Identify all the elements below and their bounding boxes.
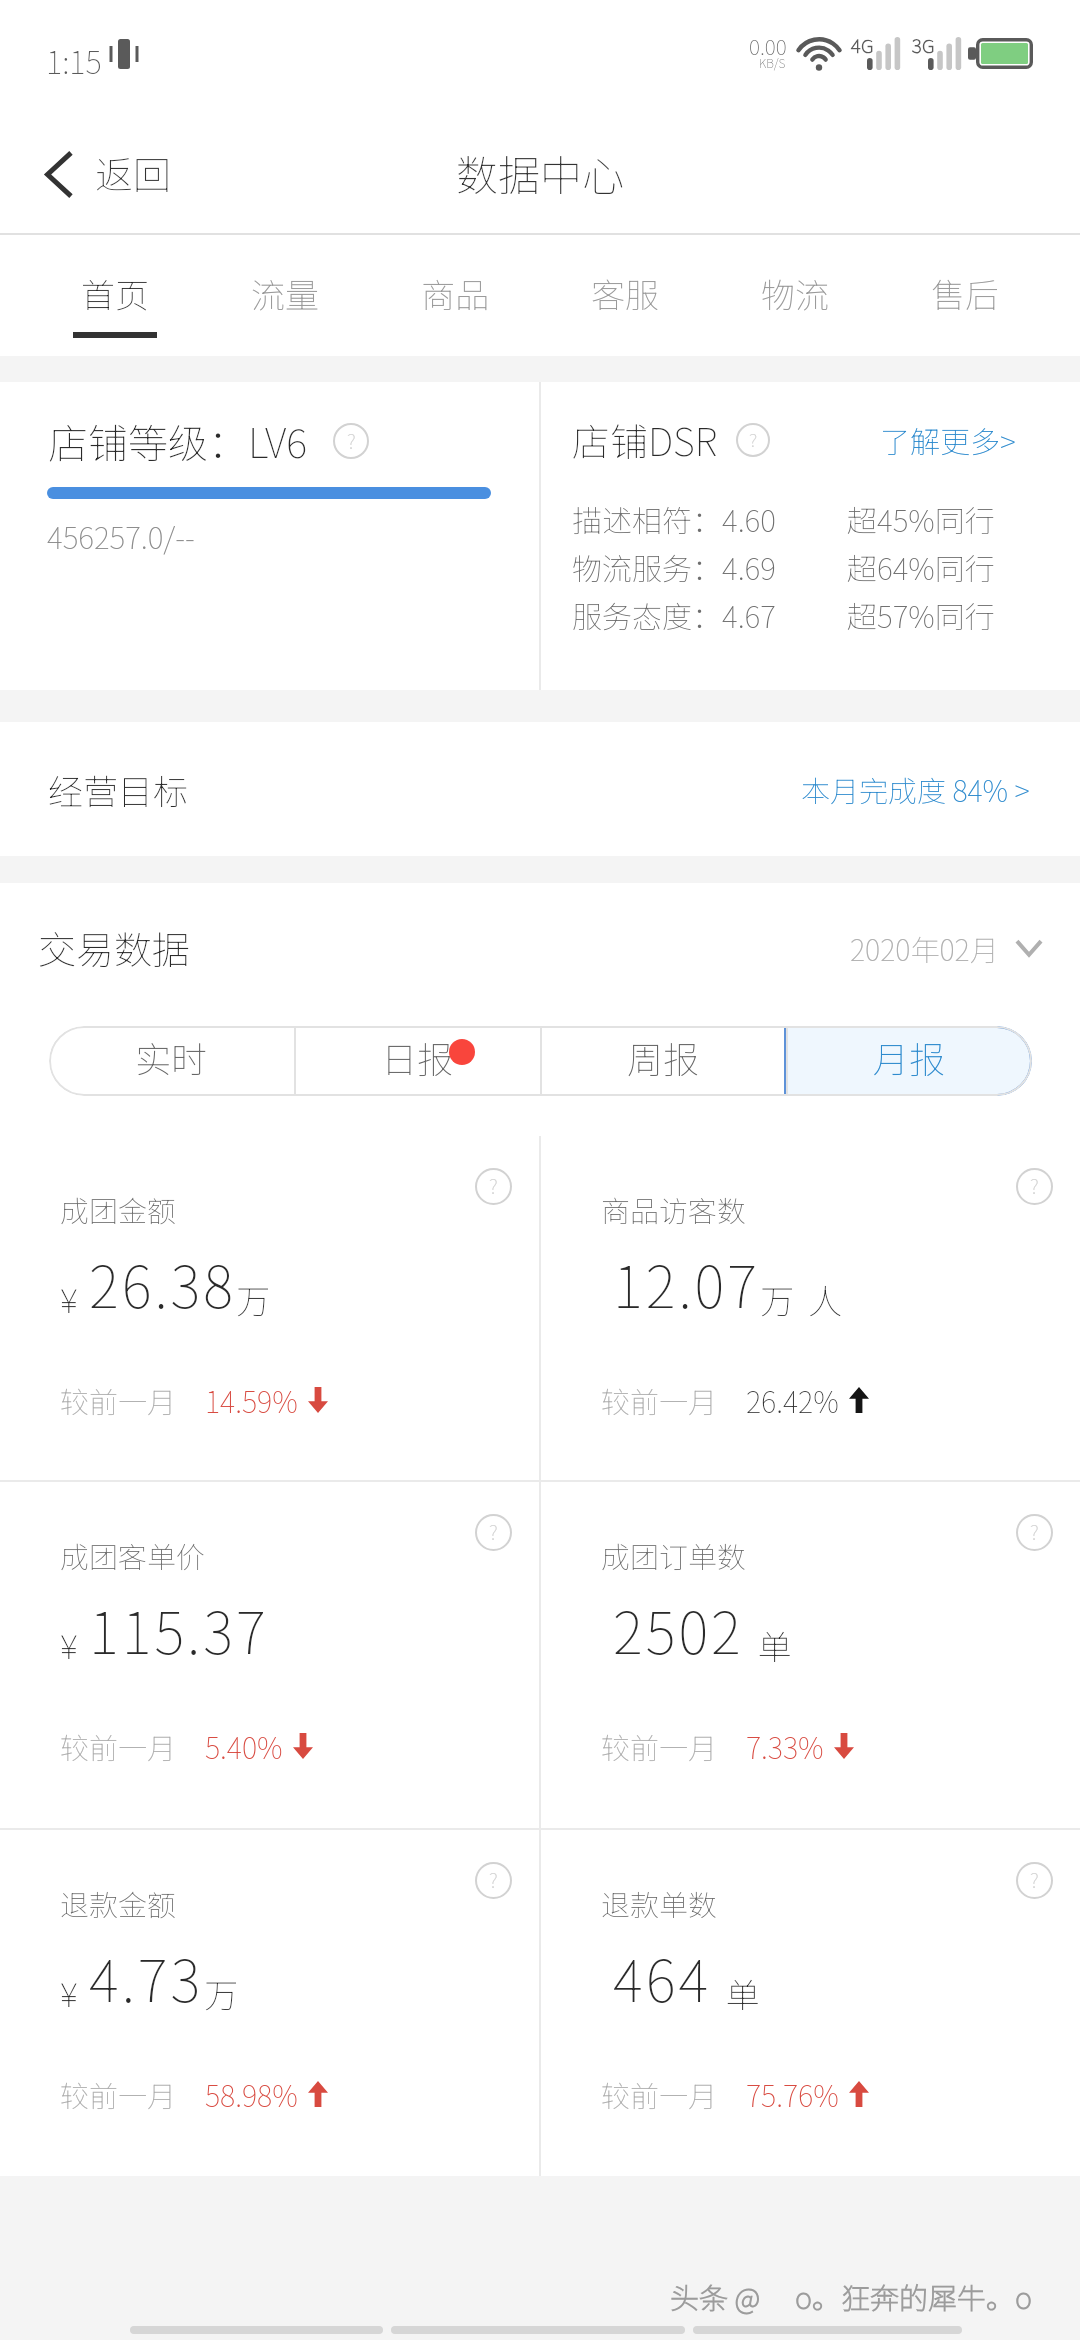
staticText: 商品访客数 bbox=[601, 1188, 747, 1230]
staticText: 交易数据 bbox=[38, 920, 191, 975]
staticText: 返回 bbox=[95, 145, 172, 200]
staticText: 2502 bbox=[613, 1588, 744, 1671]
staticText: ? bbox=[489, 1865, 498, 1894]
button[interactable]: 商品 bbox=[370, 235, 540, 356]
staticText: 115.37 bbox=[89, 1588, 269, 1671]
staticText: 经营目标 bbox=[48, 764, 189, 815]
button[interactable]: 实时 bbox=[49, 1026, 294, 1096]
staticText: 商品 bbox=[421, 269, 489, 318]
staticText: 456257.0/-- bbox=[47, 514, 195, 557]
button[interactable]: 说明 bbox=[541, 1830, 1080, 2176]
staticText: 服务态度：4.67 bbox=[572, 593, 847, 636]
staticText: 退款单数 bbox=[601, 1882, 718, 1924]
staticText: 14.59% bbox=[205, 1379, 298, 1421]
staticText: 超57%同行 bbox=[847, 593, 995, 636]
staticText: ? bbox=[489, 1171, 498, 1200]
staticText: KB/S bbox=[759, 54, 786, 71]
staticText: 较前一月 bbox=[60, 1725, 177, 1767]
staticText: 75.76% bbox=[746, 2073, 839, 2115]
staticText: ¥ bbox=[60, 1968, 78, 2017]
staticText: 万 bbox=[760, 1275, 794, 1324]
button[interactable]: 说明 bbox=[475, 1514, 512, 1551]
staticText: 店铺等级：LV6 bbox=[48, 412, 308, 470]
staticText: ? bbox=[1030, 1865, 1039, 1894]
button[interactable]: 说明 bbox=[0, 1482, 539, 1828]
staticText: 实时 bbox=[135, 1031, 208, 1083]
staticText: 物流 bbox=[761, 269, 829, 318]
staticText: 店铺DSR bbox=[572, 412, 718, 467]
button[interactable]: 说明 bbox=[0, 1136, 539, 1480]
button[interactable]: 客服 bbox=[540, 235, 710, 356]
staticText: 月报 bbox=[873, 1031, 946, 1083]
button[interactable]: 说明 bbox=[333, 423, 369, 459]
staticText: 1:15 bbox=[46, 38, 102, 83]
button[interactable]: 月报 bbox=[786, 1026, 1032, 1096]
staticText: 万 bbox=[204, 1969, 238, 2018]
button[interactable]: 说明 bbox=[0, 1830, 539, 2176]
staticText: 单 bbox=[758, 1621, 792, 1670]
button[interactable]: 说明 bbox=[541, 1482, 1080, 1828]
staticText: 本月完成度 84% > bbox=[801, 768, 1030, 810]
staticText: 成团订单数 bbox=[601, 1534, 747, 1576]
staticText: 单 bbox=[726, 1969, 760, 2018]
staticText: 退款金额 bbox=[60, 1882, 177, 1924]
staticText: 成团金额 bbox=[60, 1188, 177, 1230]
staticText: 首页 bbox=[81, 269, 149, 318]
staticText: 4G bbox=[851, 31, 874, 59]
staticText: 日报 bbox=[381, 1031, 454, 1083]
staticText: ¥ bbox=[60, 1274, 78, 1323]
button[interactable]: 说明 bbox=[541, 1136, 1080, 1480]
staticText: 7.33% bbox=[746, 1725, 824, 1767]
staticText: 2020年02月 bbox=[850, 927, 999, 969]
button[interactable]: 了解更多> bbox=[880, 418, 1016, 461]
staticText: 464 bbox=[613, 1936, 712, 2019]
button[interactable]: 说明 bbox=[736, 423, 770, 457]
button[interactable]: 2020年02月 bbox=[850, 927, 1043, 969]
button[interactable]: 经营目标 bbox=[0, 722, 1080, 856]
staticText: 人 bbox=[808, 1275, 842, 1324]
button[interactable]: 说明 bbox=[475, 1862, 512, 1899]
staticText: 较前一月 bbox=[601, 1379, 718, 1421]
staticText: 较前一月 bbox=[60, 1379, 177, 1421]
staticText: 26.42% bbox=[746, 1379, 839, 1421]
staticText: 12.07 bbox=[613, 1242, 760, 1325]
staticText: 头条 @ bbox=[670, 2275, 761, 2317]
button[interactable]: 首页 bbox=[30, 235, 200, 356]
button[interactable]: 说明 bbox=[1016, 1514, 1053, 1551]
staticText: 较前一月 bbox=[60, 2073, 177, 2115]
button[interactable]: 店铺DSR bbox=[541, 382, 1080, 690]
staticText: 售后 bbox=[931, 269, 999, 318]
button[interactable]: 流量 bbox=[200, 235, 370, 356]
staticText: ? bbox=[1030, 1171, 1039, 1200]
staticText: 流量 bbox=[251, 269, 319, 318]
button[interactable]: 返回 bbox=[0, 112, 196, 235]
button[interactable]: 日报 bbox=[294, 1026, 540, 1096]
staticText: 3G bbox=[912, 31, 935, 59]
staticText: 数据中心 bbox=[456, 142, 625, 203]
staticText: 万 bbox=[236, 1275, 270, 1324]
staticText: 较前一月 bbox=[601, 2073, 718, 2115]
button[interactable]: 店铺等级：LV6 bbox=[0, 382, 539, 690]
staticText: 0.00 bbox=[749, 31, 787, 61]
staticText: 58.98% bbox=[205, 2073, 298, 2115]
button[interactable]: 说明 bbox=[475, 1168, 512, 1205]
staticText: 超64%同行 bbox=[847, 545, 995, 588]
staticText: ? bbox=[1030, 1517, 1039, 1546]
button[interactable]: 物流 bbox=[710, 235, 880, 356]
staticText: ? bbox=[489, 1517, 498, 1546]
button[interactable]: 售后 bbox=[880, 235, 1050, 356]
staticText: 客服 bbox=[591, 269, 659, 318]
button[interactable]: 周报 bbox=[540, 1026, 786, 1096]
staticText: 了解更多> bbox=[880, 418, 1016, 461]
staticText: 5.40% bbox=[205, 1725, 283, 1767]
staticText: o。狂奔的犀牛。o bbox=[795, 2275, 1032, 2317]
staticText: ¥ bbox=[60, 1620, 78, 1669]
button[interactable]: 说明 bbox=[1016, 1168, 1053, 1205]
staticText: 较前一月 bbox=[601, 1725, 718, 1767]
staticText: 描述相符：4.60 bbox=[572, 497, 847, 540]
staticText: 物流服务：4.69 bbox=[572, 545, 847, 588]
staticText: 4.73 bbox=[89, 1936, 204, 2019]
button[interactable]: 说明 bbox=[1016, 1862, 1053, 1899]
staticText: 超45%同行 bbox=[847, 497, 995, 540]
staticText: ? bbox=[347, 426, 356, 455]
